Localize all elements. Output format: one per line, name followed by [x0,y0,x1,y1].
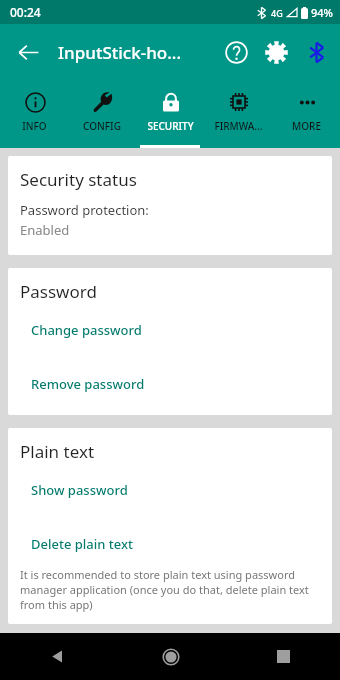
button[interactable]: Show password [20,463,320,517]
button[interactable]: FIRMWA... [204,80,272,148]
staticText: Remove password [31,375,145,393]
staticText: CONFIG [83,119,121,133]
button[interactable]: Remove password [20,357,320,415]
staticText: Security status [20,168,137,191]
button[interactable]: Home [114,633,227,680]
staticText: Enabled [20,221,70,239]
button[interactable]: SECURITY [136,80,204,148]
staticText: 00:24 [10,4,41,20]
staticText: Plain text [20,440,95,463]
button[interactable]: Delete plain text [20,517,320,567]
button[interactable]: Change password [20,303,320,357]
button[interactable]: Settings [256,32,296,72]
staticText: Password [20,280,97,303]
staticText: INFO [22,119,47,133]
staticText: FIRMWA... [214,119,263,133]
staticText: Change password [31,321,142,339]
staticText: InputStick-ho... [58,41,182,64]
staticText: Delete plain text [31,535,134,553]
button[interactable]: Back [6,30,50,74]
staticText: It is recommended to store plain text us… [20,567,320,612]
staticText: MORE [292,119,321,133]
staticText: Show password [31,481,128,499]
button[interactable]: Bluetooth [296,32,336,72]
button[interactable]: Help [216,32,256,72]
button[interactable]: Recents [227,633,340,680]
button[interactable]: Back [0,633,114,680]
staticText: 94% [311,5,333,20]
staticText: 4G [271,7,283,19]
staticText: Password protection: [20,201,149,219]
button[interactable]: INFO [0,80,68,148]
button[interactable]: MORE [272,80,340,148]
button[interactable]: CONFIG [68,80,136,148]
staticText: SECURITY [147,119,194,133]
